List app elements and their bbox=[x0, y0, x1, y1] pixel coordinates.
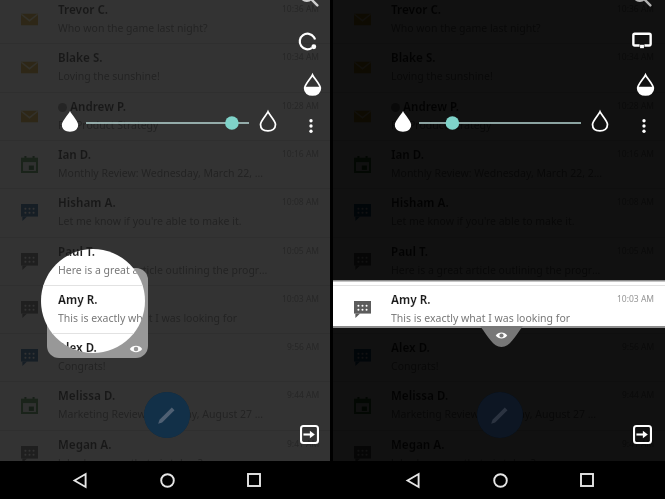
button[interactable]: Alex D. bbox=[333, 333, 665, 381]
staticText: This is exactly what I was looking for bbox=[391, 311, 571, 325]
button[interactable]: Home bbox=[477, 461, 523, 499]
button[interactable]: Recents bbox=[231, 461, 277, 499]
button[interactable]: Compose bbox=[477, 392, 523, 438]
button[interactable]: More options bbox=[303, 118, 319, 134]
button[interactable]: Amy R. bbox=[0, 285, 330, 333]
button[interactable]: Dim filter bbox=[301, 73, 324, 96]
button[interactable]: Dim filter bbox=[634, 73, 657, 96]
button[interactable]: Melissa D. bbox=[0, 381, 330, 429]
button[interactable]: Paul T. bbox=[333, 237, 665, 285]
staticText: Alex D. bbox=[391, 340, 430, 356]
staticText: Megan A. bbox=[58, 437, 112, 453]
button[interactable]: Melissa D. bbox=[333, 381, 665, 429]
button[interactable]: Megan A. bbox=[333, 430, 665, 478]
button[interactable]: Compose bbox=[144, 392, 190, 438]
button[interactable]: Exit bbox=[633, 425, 652, 444]
button[interactable]: Paul T. bbox=[0, 237, 330, 285]
button[interactable]: Megan A. bbox=[333, 430, 665, 478]
button[interactable]: Preview bbox=[480, 326, 523, 347]
button[interactable]: Amy R. bbox=[0, 285, 330, 333]
button[interactable]: Compose bbox=[477, 392, 523, 438]
button[interactable]: Amy R. bbox=[333, 285, 665, 333]
button[interactable]: Recents bbox=[564, 461, 610, 499]
button[interactable]: Home bbox=[477, 461, 523, 499]
button[interactable]: Andrew P. bbox=[0, 92, 330, 140]
staticText: 10:03 AM bbox=[282, 293, 320, 305]
button[interactable]: Alex D. bbox=[0, 333, 330, 381]
button[interactable]: Melissa D. bbox=[333, 381, 665, 429]
button[interactable]: Compose bbox=[477, 392, 523, 438]
button[interactable]: Trevor C. bbox=[333, 0, 665, 43]
staticText: Hisham A. bbox=[58, 195, 116, 211]
button[interactable]: Trevor C. bbox=[0, 0, 330, 43]
button[interactable]: Schedule bbox=[297, 31, 318, 52]
button[interactable]: Andrew P. bbox=[333, 92, 665, 140]
button[interactable]: Melissa D. bbox=[0, 381, 330, 429]
staticText: Loving the sunshine! bbox=[58, 69, 160, 83]
staticText: 10:34 AM bbox=[282, 51, 320, 63]
button[interactable]: Preview bbox=[129, 342, 143, 356]
staticText: Here is a great article outlining the pr… bbox=[58, 263, 268, 277]
button[interactable]: Recents bbox=[231, 461, 277, 499]
button[interactable]: Megan A. bbox=[0, 430, 330, 478]
button[interactable]: Amy R. bbox=[333, 285, 665, 333]
staticText: Paul T. bbox=[58, 244, 96, 260]
staticText: This is exactly what I was looking for bbox=[58, 311, 238, 325]
button[interactable]: Back bbox=[57, 461, 103, 499]
button[interactable]: Back bbox=[57, 461, 103, 499]
button[interactable]: Compose bbox=[144, 392, 190, 438]
button[interactable]: Back bbox=[390, 461, 436, 499]
button[interactable]: Alex D. bbox=[0, 333, 330, 381]
button[interactable]: Paul T. bbox=[333, 237, 665, 285]
button[interactable]: Blake S. bbox=[333, 43, 665, 91]
button[interactable]: Screen filter bbox=[630, 28, 654, 52]
button[interactable]: Hisham A. bbox=[0, 188, 330, 236]
button[interactable]: Megan A. bbox=[0, 430, 330, 478]
button[interactable]: Andrew P. bbox=[0, 92, 330, 140]
button[interactable]: More options bbox=[636, 118, 652, 134]
button[interactable]: Blake S. bbox=[0, 43, 330, 91]
button[interactable]: Ian D. bbox=[0, 140, 330, 188]
staticText: This is exactly what I was looking for bbox=[391, 311, 571, 325]
button[interactable]: Hisham A. bbox=[0, 188, 330, 236]
staticText: Marketing Review: Thursday, August 27 ..… bbox=[58, 407, 264, 421]
staticText: Amy R. bbox=[391, 292, 431, 308]
button[interactable]: Trevor C. bbox=[333, 0, 665, 43]
staticText: 10:08 AM bbox=[282, 196, 320, 208]
button[interactable]: Blake S. bbox=[0, 43, 330, 91]
staticText: Blake S. bbox=[391, 50, 436, 66]
staticText: 10:05 AM bbox=[282, 245, 320, 257]
button[interactable]: Ian D. bbox=[0, 140, 330, 188]
staticText: Melissa D. bbox=[391, 388, 449, 404]
button[interactable]: Recents bbox=[564, 461, 610, 499]
button[interactable]: Home bbox=[144, 461, 190, 499]
button[interactable]: Trevor C. bbox=[0, 0, 330, 43]
staticText: 10:03 AM bbox=[617, 293, 655, 305]
staticText: Trevor C. bbox=[58, 2, 109, 18]
other: Search bbox=[298, 0, 320, 8]
button[interactable]: Home bbox=[144, 461, 190, 499]
staticText: 10:16 AM bbox=[282, 148, 320, 160]
button[interactable]: Exit bbox=[300, 425, 319, 444]
staticText: Andrew P. bbox=[403, 99, 459, 115]
button[interactable]: Compose bbox=[144, 392, 190, 438]
staticText: Congrats! bbox=[58, 359, 106, 373]
staticText: 10:36 AM bbox=[282, 3, 320, 15]
staticText: Alex D. bbox=[58, 340, 97, 356]
staticText: Trevor C. bbox=[391, 2, 442, 18]
button[interactable]: Back bbox=[390, 461, 436, 499]
button[interactable]: Andrew P. bbox=[333, 92, 665, 140]
button[interactable]: Blake S. bbox=[333, 43, 665, 91]
button[interactable]: Alex D. bbox=[333, 333, 665, 381]
button[interactable]: Paul T. bbox=[0, 237, 330, 285]
